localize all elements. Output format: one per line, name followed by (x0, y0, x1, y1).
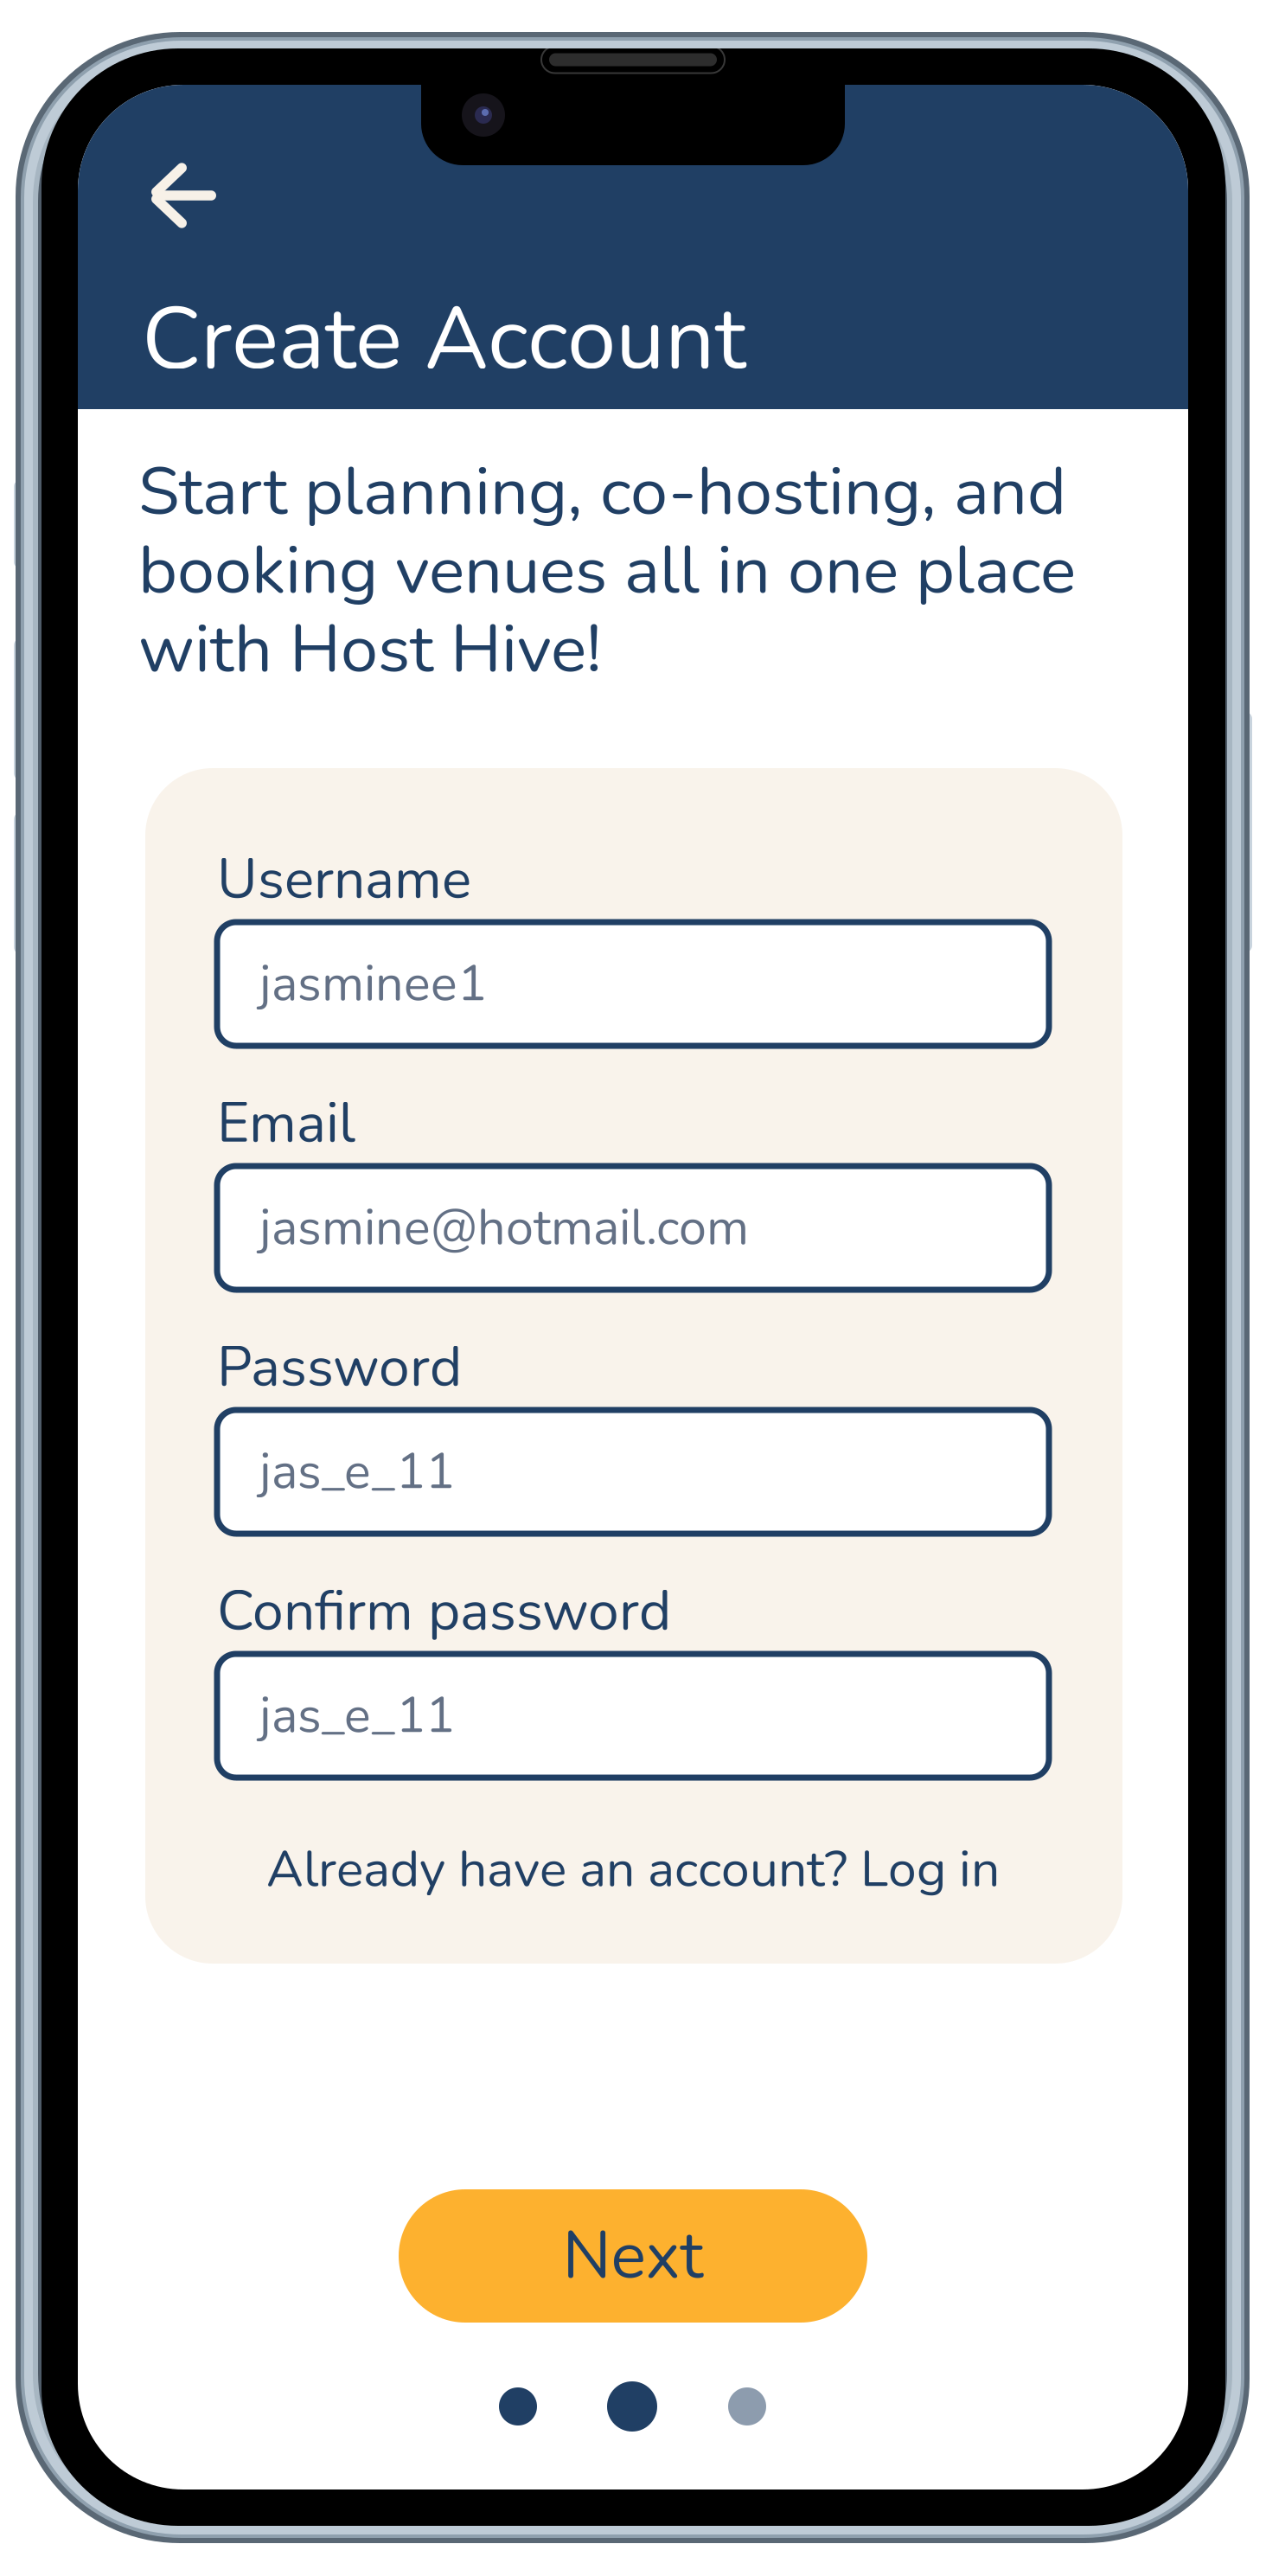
staticText: Create Account (142, 279, 745, 399)
button[interactable]: jas_e_11 (217, 1410, 1049, 1534)
button[interactable]: Already have an account? (217, 1839, 1049, 1900)
staticText: jasminee1 (259, 950, 487, 1018)
staticText: Next (563, 2211, 703, 2301)
staticText: jas_e_11 (259, 1682, 455, 1750)
button[interactable]: jasmine@hotmail.com (217, 1166, 1049, 1290)
staticText: Confirm password (217, 1573, 671, 1649)
staticText: Password (217, 1330, 462, 1405)
staticText: Email (217, 1086, 355, 1161)
button[interactable]: Next (399, 2189, 867, 2323)
staticText: Username (217, 842, 471, 917)
staticText: Already have an account? (266, 1835, 860, 1904)
button[interactable]: jas_e_11 (217, 1654, 1049, 1778)
button[interactable]: jasminee1 (217, 922, 1049, 1046)
staticText: booking venues all in one place (138, 525, 1076, 616)
staticText: jas_e_11 (259, 1438, 455, 1506)
button[interactable]: Back (128, 142, 239, 249)
staticText: Start planning, co-hosting, and (138, 446, 1066, 537)
staticText: jasmine@hotmail.com (259, 1194, 749, 1262)
staticText: with Host Hive! (138, 604, 602, 695)
staticText: Log in (860, 1835, 1000, 1904)
